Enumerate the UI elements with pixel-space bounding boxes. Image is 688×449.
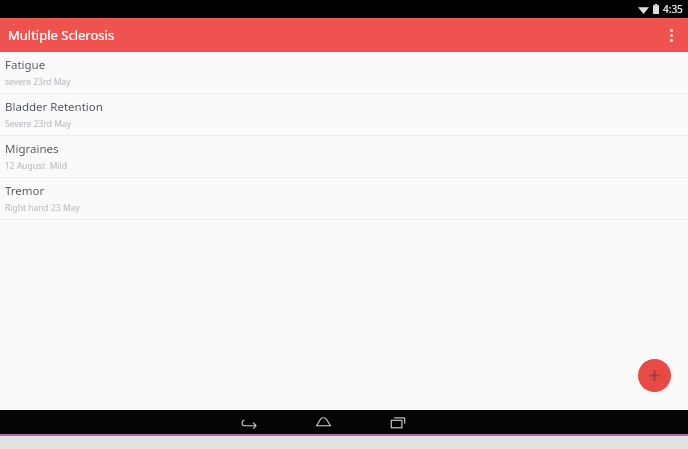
- staticText: 4:35: [663, 2, 683, 16]
- staticText: Right hand 23 May: [5, 202, 80, 214]
- button[interactable]: Home: [311, 410, 335, 434]
- staticText: severe 23rd May: [5, 76, 71, 88]
- staticText: Fatigue: [5, 57, 46, 73]
- staticText: 12 August Mild: [5, 160, 67, 172]
- staticText: Bladder Retention: [5, 99, 103, 115]
- staticText: Migraines: [5, 141, 59, 157]
- staticText: Multiple Sclerosis: [8, 26, 115, 44]
- button[interactable]: Tremor: [0, 178, 688, 219]
- button[interactable]: Fatigue: [0, 52, 688, 93]
- staticText: Tremor: [5, 183, 45, 199]
- button[interactable]: Migraines: [0, 136, 688, 177]
- button[interactable]: Back: [236, 410, 260, 434]
- button[interactable]: More options: [654, 18, 688, 52]
- button[interactable]: Add symptom: [638, 359, 671, 392]
- button[interactable]: Recent apps: [386, 410, 410, 434]
- button[interactable]: Bladder Retention: [0, 94, 688, 135]
- staticText: Severe 23rd May: [5, 118, 72, 130]
